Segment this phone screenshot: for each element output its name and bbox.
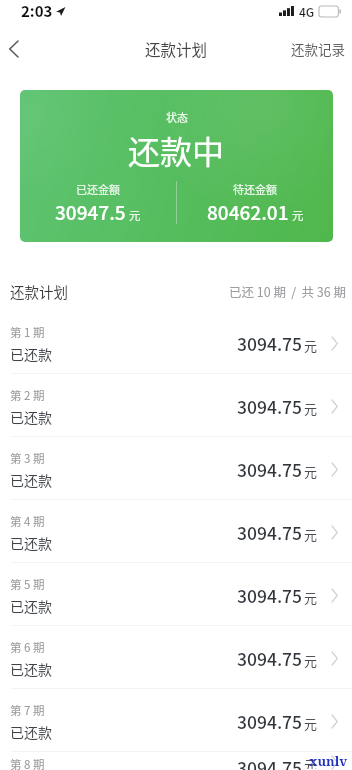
button[interactable]: 第 2 期 [0, 374, 352, 436]
staticText: 3094.75 [237, 457, 303, 482]
staticText: 3094.75 [237, 583, 303, 608]
button[interactable]: 第 4 期 [0, 500, 352, 562]
staticText: 已还金额 [76, 181, 120, 197]
staticText: 还款计划 [10, 281, 68, 302]
staticText: 第 1 期 [10, 324, 45, 341]
staticText: 第 2 期 [10, 387, 45, 404]
staticText: 元 [304, 336, 318, 355]
staticText: 3094.75 [237, 709, 303, 734]
staticText: 已还款 [10, 533, 52, 553]
button[interactable]: 第 5 期 [0, 563, 352, 625]
staticText: 第 4 期 [10, 513, 45, 530]
staticText: 元 [304, 714, 318, 733]
staticText: 80462.01 [207, 198, 289, 226]
button[interactable]: 第 7 期 [0, 689, 352, 751]
staticText: 3094.75 [237, 755, 303, 770]
staticText: 已还款 [10, 722, 52, 742]
button[interactable]: 还款记录 [277, 26, 352, 72]
staticText: 3094.75 [237, 331, 303, 356]
staticText: 4G [299, 3, 315, 20]
staticText: 已还款 [10, 659, 52, 679]
button[interactable]: 第 1 期 [0, 311, 352, 373]
staticText: 第 5 期 [10, 576, 45, 593]
staticText: 元 [304, 462, 318, 481]
staticText: 状态 [166, 109, 188, 125]
staticText: 第 7 期 [10, 702, 45, 719]
staticText: 元 [304, 525, 318, 544]
staticText: 已还款 [10, 407, 52, 427]
staticText: 3094.75 [237, 394, 303, 419]
staticText: 元 [304, 399, 318, 418]
staticText: 第 6 期 [10, 639, 45, 656]
staticText: 已还 10 期 / 共 36 期 [229, 282, 346, 300]
staticText: 3094.75 [237, 520, 303, 545]
staticText: 还款记录 [291, 39, 345, 59]
staticText: 第 3 期 [10, 450, 45, 467]
staticText: 2:03 [21, 0, 53, 22]
staticText: 元 [304, 651, 318, 670]
staticText: 还款计划 [145, 38, 208, 60]
staticText: 元 [292, 207, 304, 224]
staticText: 30947.5 [55, 198, 126, 226]
staticText: 第 8 期 [10, 756, 45, 770]
button[interactable]: 第 3 期 [0, 437, 352, 499]
staticText: 元 [304, 755, 318, 769]
staticText: 3094.75 [237, 646, 303, 671]
staticText: 待还金额 [233, 181, 277, 197]
staticText: xunlv [309, 752, 348, 770]
staticText: 已还款 [10, 596, 52, 616]
staticText: 还款中 [128, 127, 225, 173]
staticText: 元 [304, 588, 318, 607]
button[interactable]: 第 8 期 [0, 752, 352, 770]
button[interactable]: 第 6 期 [0, 626, 352, 688]
staticText: 已还款 [10, 470, 52, 490]
button[interactable]: Back [0, 26, 28, 72]
staticText: 已还款 [10, 344, 52, 364]
staticText: 元 [129, 207, 141, 224]
